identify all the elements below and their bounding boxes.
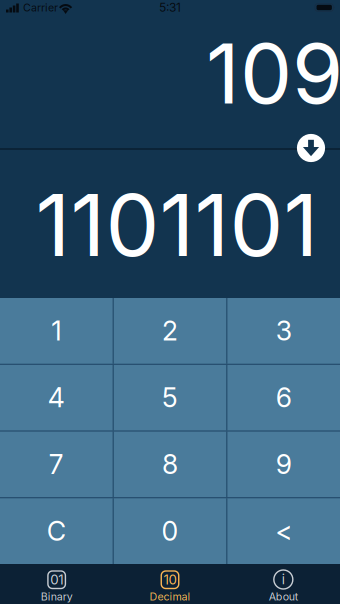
staticText: 01 (50, 572, 63, 588)
staticText: 5:31 (159, 0, 181, 15)
button[interactable]: C (0, 498, 113, 564)
button[interactable]: 9 (227, 431, 340, 497)
staticText: 4 (48, 381, 65, 414)
staticText: 10 (163, 572, 176, 588)
button[interactable]: 4 (0, 365, 113, 431)
staticText: 0 (161, 515, 178, 547)
staticText: 9 (276, 448, 292, 480)
button[interactable]: 01 (0, 564, 113, 604)
staticText: C (47, 515, 66, 547)
staticText: 2 (162, 315, 178, 347)
staticText: 1101101 (35, 173, 318, 277)
button[interactable]: 5 (114, 365, 226, 431)
staticText: 5 (162, 381, 178, 414)
staticText: i (282, 571, 285, 587)
staticText: Binary (41, 590, 73, 603)
staticText: Carrier (23, 1, 58, 14)
button[interactable]: 10 (113, 564, 227, 604)
button[interactable]: 1 (0, 298, 113, 364)
staticText: 109 (206, 23, 340, 123)
staticText: 8 (162, 448, 178, 480)
button[interactable]: 3 (227, 298, 340, 364)
staticText: About (269, 590, 298, 603)
staticText: < (275, 515, 292, 547)
button[interactable]: i (227, 564, 340, 604)
staticText: 3 (276, 315, 292, 347)
staticText: 7 (49, 448, 64, 480)
staticText: 1 (51, 315, 61, 347)
button[interactable]: 2 (114, 298, 226, 364)
button[interactable]: 6 (227, 365, 340, 431)
button[interactable]: 0 (114, 498, 226, 564)
button[interactable]: < (227, 498, 340, 564)
button[interactable]: Convert to binary (294, 131, 328, 165)
button[interactable]: 8 (114, 431, 226, 497)
staticText: Decimal (149, 590, 190, 603)
staticText: 6 (276, 381, 292, 414)
button[interactable]: 7 (0, 431, 113, 497)
